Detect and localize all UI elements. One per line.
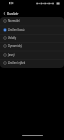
button[interactable]: Zesílení výšek (0, 59, 64, 67)
button[interactable]: Jasný (0, 51, 64, 59)
button[interactable]: Normální (0, 17, 64, 25)
staticText: Zesílení basů (8, 28, 25, 32)
staticText: Jasný (8, 53, 15, 57)
staticText: Normální (8, 19, 20, 23)
staticText: Dynamický (8, 44, 22, 48)
button[interactable]: Vokály (0, 34, 64, 42)
staticText: Vokály (8, 36, 17, 40)
button[interactable]: Back (0, 8, 8, 18)
staticText: Zesílení výšek (8, 61, 26, 65)
button[interactable]: Zesílení basů (0, 26, 64, 34)
button[interactable]: Dynamický (0, 42, 64, 50)
staticText: Ekvalizér (7, 12, 19, 16)
